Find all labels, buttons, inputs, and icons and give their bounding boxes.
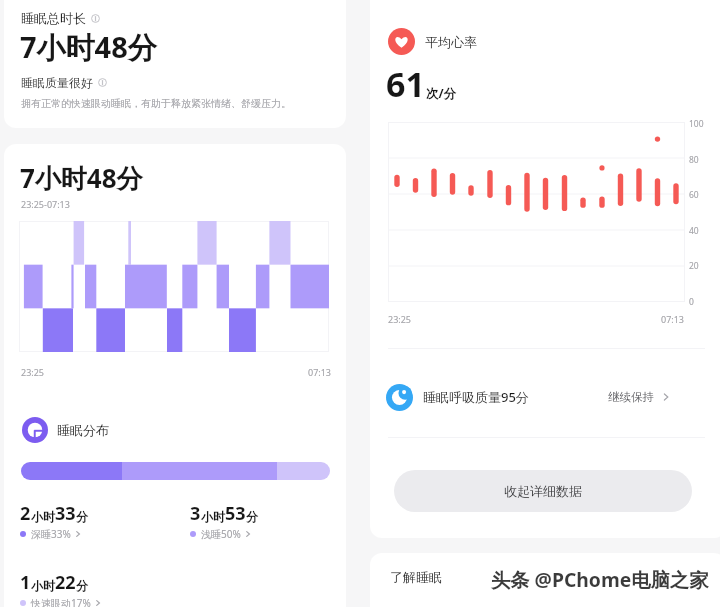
staticText: 分 bbox=[76, 578, 88, 593]
staticText: 33 bbox=[55, 501, 76, 526]
button[interactable] bbox=[21, 462, 330, 480]
staticText: 小时 bbox=[201, 509, 225, 524]
button[interactable]: 收起详细数据 bbox=[394, 470, 692, 512]
staticText: 23:25 bbox=[21, 366, 45, 378]
staticText: 23:25 bbox=[388, 313, 412, 325]
staticText: 睡眠总时长 bbox=[21, 10, 86, 26]
staticText: 深睡33% bbox=[31, 527, 71, 541]
button[interactable]: 睡眠分布 bbox=[22, 417, 109, 443]
staticText: 20 bbox=[689, 260, 699, 272]
staticText: 继续保持 bbox=[608, 390, 654, 404]
staticText: 浅睡50% bbox=[201, 527, 241, 541]
other: 睡眠分布 bbox=[22, 417, 48, 443]
staticText: 2 bbox=[20, 501, 31, 526]
button[interactable]: 2 bbox=[20, 501, 88, 541]
staticText: 3 bbox=[190, 501, 201, 526]
staticText: 小时 bbox=[31, 509, 55, 524]
button[interactable]: 睡眠呼吸质量95分 bbox=[370, 375, 671, 419]
staticText: 53 bbox=[225, 501, 246, 526]
staticText: 了解睡眠 bbox=[390, 569, 442, 585]
staticText: 平均心率 bbox=[425, 34, 477, 50]
button[interactable]: 3 bbox=[190, 501, 258, 541]
staticText: 收起详细数据 bbox=[504, 483, 582, 499]
staticText: 7小时48分 bbox=[20, 27, 157, 67]
staticText: 睡眠分布 bbox=[57, 422, 109, 438]
staticText: 小时 bbox=[31, 578, 55, 593]
staticText: 40 bbox=[689, 225, 699, 237]
staticText: 拥有正常的快速眼动睡眠，有助于释放紧张情绪、舒缓压力。 bbox=[21, 97, 291, 110]
staticText: 睡眠质量很好 bbox=[21, 75, 93, 90]
staticText: 07:13 bbox=[661, 313, 685, 325]
staticText: 60 bbox=[689, 189, 699, 201]
staticText: 7小时48分 bbox=[20, 160, 143, 196]
staticText: 分 bbox=[76, 509, 88, 524]
staticText: 22 bbox=[55, 570, 76, 595]
staticText: 61 bbox=[386, 61, 425, 107]
staticText: 23:25-07:13 bbox=[21, 198, 70, 210]
staticText: 次/分 bbox=[426, 85, 457, 102]
staticText: 07:13 bbox=[308, 366, 332, 378]
staticText: 80 bbox=[689, 154, 699, 166]
staticText: 1 bbox=[20, 570, 31, 595]
staticText: 快速眼动17% bbox=[31, 596, 91, 607]
button[interactable]: 了解睡眠 bbox=[372, 553, 492, 605]
staticText: 0 bbox=[689, 296, 694, 308]
staticText: 头条 @PChome电脑之家 bbox=[491, 566, 709, 592]
staticText: 100 bbox=[689, 118, 704, 130]
staticText: 分 bbox=[246, 509, 258, 524]
staticText: 睡眠呼吸质量95分 bbox=[423, 388, 529, 406]
button[interactable]: 1 bbox=[20, 570, 102, 607]
